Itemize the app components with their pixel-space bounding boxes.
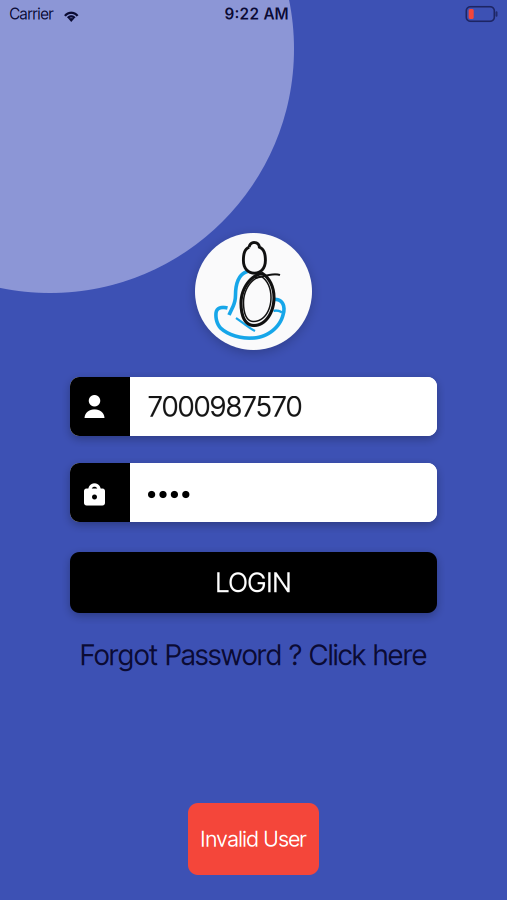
staticText: Carrier xyxy=(9,5,53,23)
button[interactable]: Mobile number xyxy=(70,377,437,436)
staticText: LOGIN xyxy=(215,566,291,599)
button[interactable]: Password xyxy=(70,463,437,522)
staticText: 9:22 AM xyxy=(224,5,288,23)
button[interactable]: LOGIN xyxy=(70,552,437,613)
button[interactable]: Forgot Password ? Click here xyxy=(70,638,437,672)
staticText: 7000987570 xyxy=(148,390,302,423)
staticText: Forgot Password ? Click here xyxy=(80,638,427,672)
staticText: Invalid User xyxy=(200,826,306,852)
